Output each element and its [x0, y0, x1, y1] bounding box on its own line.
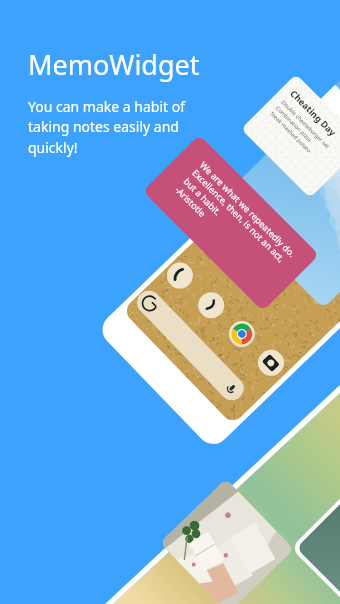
staticText: Double cheeseburger set Combination pizz… [268, 98, 331, 161]
staticText: We are what we repeatedly do. Excellence… [172, 159, 299, 285]
staticText: MemoWidget [28, 46, 200, 83]
staticText: You can make a habit of taking notes eas… [28, 97, 186, 158]
staticText: Cheating Day [288, 87, 339, 138]
